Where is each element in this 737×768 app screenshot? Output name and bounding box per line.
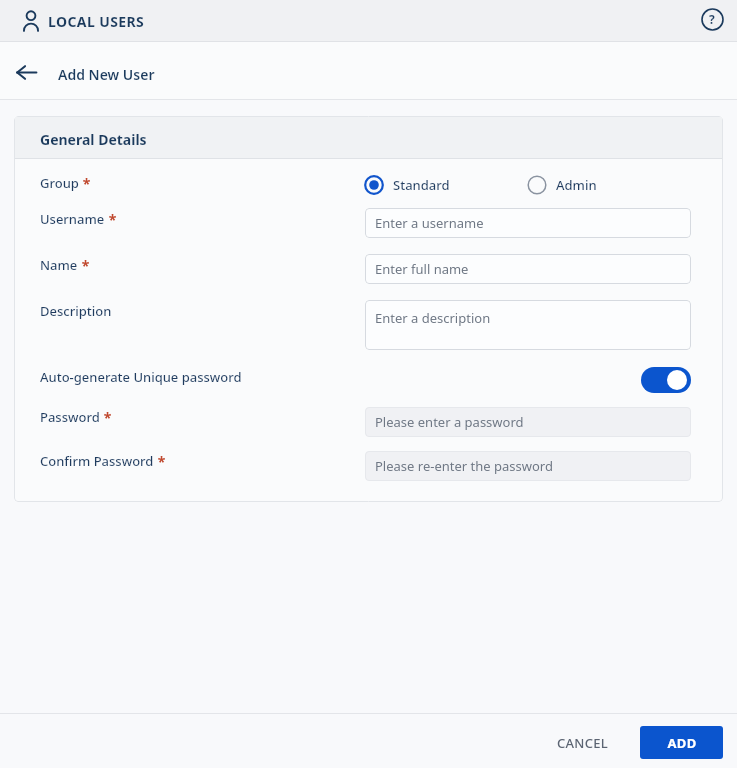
staticText: * bbox=[100, 408, 112, 427]
button[interactable]: ADD bbox=[640, 726, 723, 759]
button[interactable]: Help bbox=[695, 2, 729, 36]
staticText: ADD bbox=[667, 734, 697, 752]
button[interactable]: Local users bbox=[14, 4, 48, 38]
button[interactable]: Back bbox=[10, 56, 43, 89]
staticText: Admin bbox=[556, 176, 597, 194]
staticText: Please re-enter the password bbox=[375, 457, 553, 475]
staticText: LOCAL USERS bbox=[48, 12, 145, 31]
button[interactable]: Please enter a password bbox=[365, 407, 691, 437]
staticText: Password bbox=[40, 408, 100, 426]
button[interactable]: Auto-generate unique password toggle bbox=[641, 367, 691, 393]
staticText: General Details bbox=[40, 130, 147, 149]
button[interactable]: CANCEL bbox=[548, 727, 618, 759]
staticText: Please enter a password bbox=[375, 413, 524, 431]
staticText: * bbox=[79, 174, 91, 193]
staticText: Confirm Password bbox=[40, 452, 154, 470]
staticText: Add New User bbox=[58, 65, 155, 84]
staticText: Enter a username bbox=[375, 214, 484, 232]
button[interactable]: Admin bbox=[527, 175, 597, 195]
button[interactable]: Please re-enter the password bbox=[365, 451, 691, 481]
button[interactable]: Enter a username bbox=[365, 208, 691, 238]
staticText: Standard bbox=[393, 176, 450, 194]
staticText: * bbox=[105, 210, 117, 229]
button[interactable]: Enter a description bbox=[365, 300, 691, 350]
staticText: Username bbox=[40, 210, 105, 228]
staticText: ? bbox=[709, 11, 715, 27]
button[interactable]: Standard bbox=[364, 175, 450, 195]
staticText: * bbox=[154, 452, 166, 471]
button[interactable]: Enter full name bbox=[365, 254, 691, 284]
staticText: Enter full name bbox=[375, 260, 469, 278]
staticText: Group bbox=[40, 174, 79, 192]
staticText: Auto-generate Unique password bbox=[40, 368, 242, 386]
staticText: Name bbox=[40, 256, 78, 274]
staticText: CANCEL bbox=[557, 734, 609, 752]
staticText: Description bbox=[40, 302, 112, 320]
staticText: * bbox=[78, 256, 90, 275]
staticText: Enter a description bbox=[375, 309, 491, 327]
